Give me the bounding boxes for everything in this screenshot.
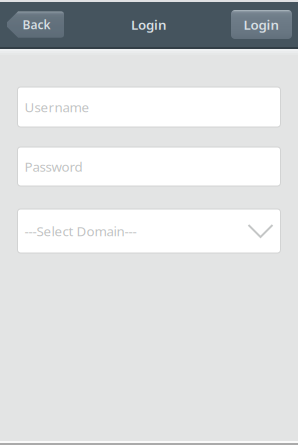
button[interactable]: ---Select Domain--- xyxy=(17,209,280,253)
button[interactable]: Login xyxy=(231,10,292,39)
staticText: Login xyxy=(243,16,279,33)
staticText: Username xyxy=(24,98,89,116)
button[interactable]: Username xyxy=(17,87,280,127)
staticText: ---Select Domain--- xyxy=(24,222,136,240)
staticText: Back xyxy=(22,16,50,32)
staticText: Password xyxy=(24,158,82,175)
button[interactable]: Back xyxy=(7,11,64,37)
staticText: Login xyxy=(131,16,167,33)
button[interactable]: Password xyxy=(17,147,280,186)
